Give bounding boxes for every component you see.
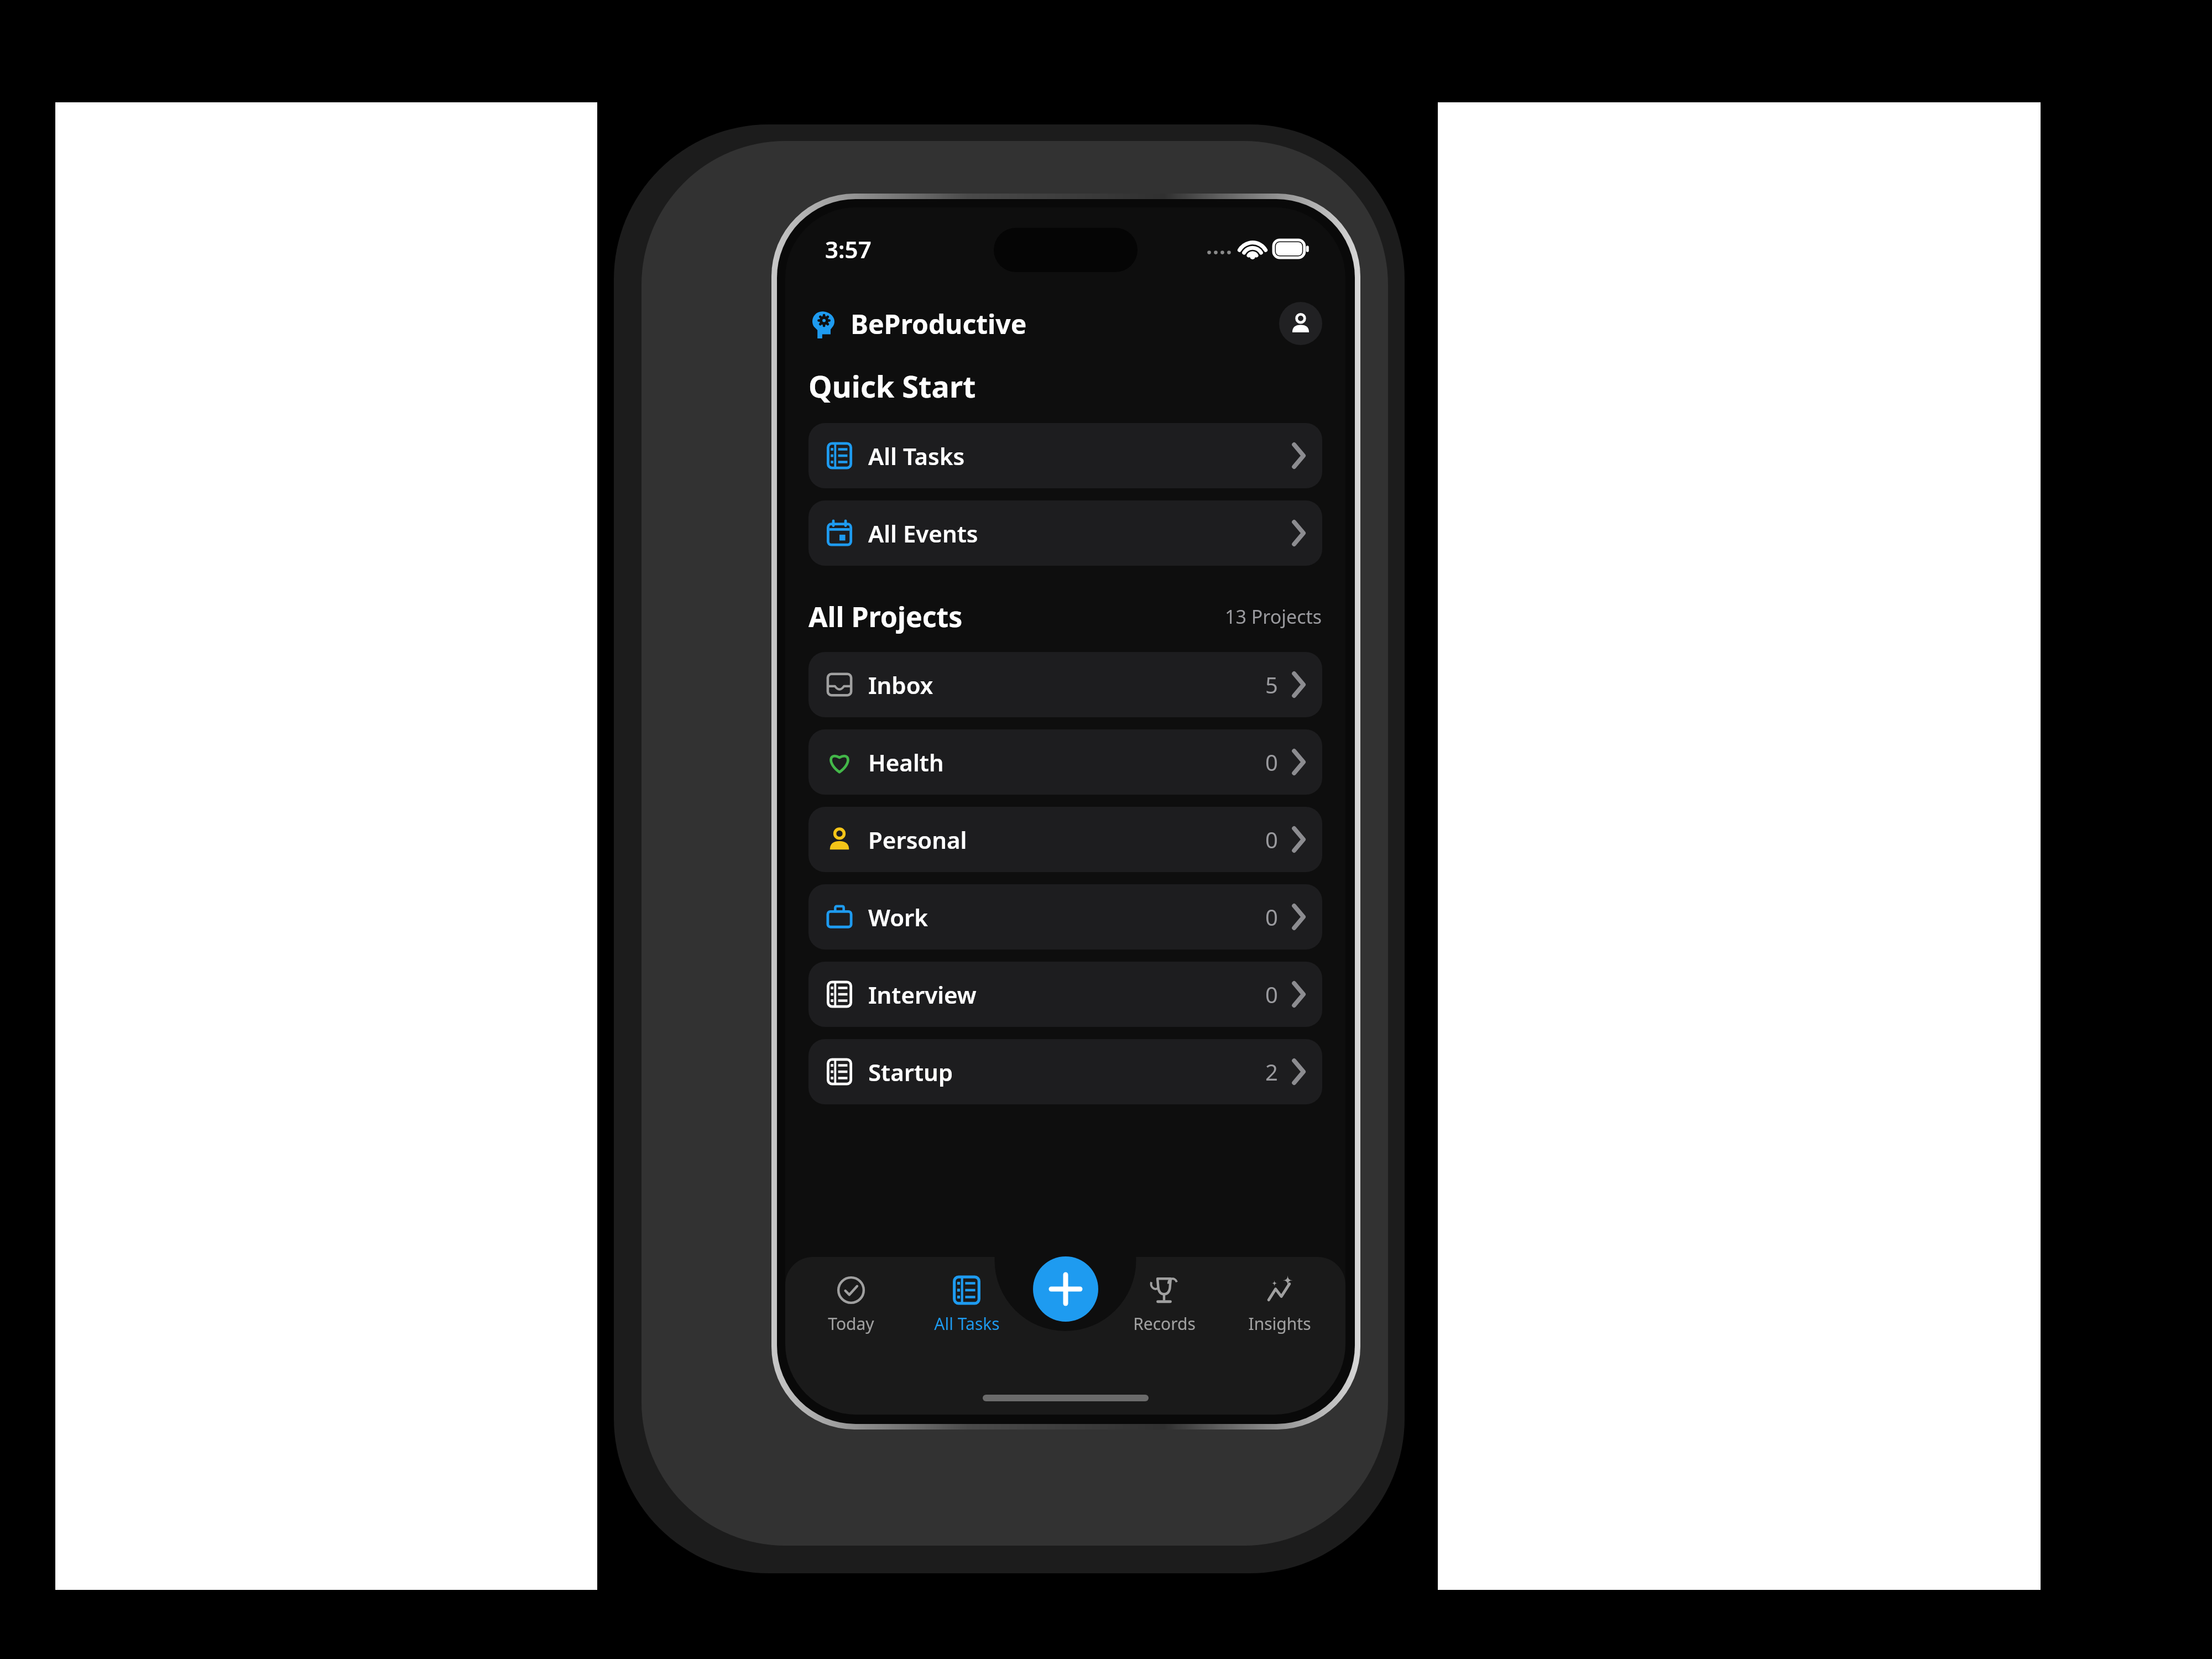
staticText: Startup <box>868 1056 953 1088</box>
button[interactable]: Inbox <box>808 652 1322 717</box>
staticText: 0 <box>1265 902 1278 932</box>
button[interactable]: Health <box>808 729 1322 795</box>
staticText: Quick Start <box>808 366 976 406</box>
staticText: Inbox <box>868 669 933 701</box>
button[interactable]: Personal <box>808 807 1322 872</box>
button[interactable]: Work <box>808 884 1322 950</box>
button[interactable]: Today <box>801 1272 901 1338</box>
staticText: Insights <box>1248 1312 1311 1335</box>
button[interactable]: All Tasks <box>917 1272 1016 1338</box>
staticText: 2 <box>1265 1057 1278 1087</box>
button[interactable]: Insights <box>1230 1272 1329 1338</box>
staticText: Health <box>868 747 944 778</box>
staticText: 13 Projects <box>1225 604 1322 629</box>
staticText: 3:57 <box>825 233 872 265</box>
staticText: All Events <box>868 518 978 549</box>
staticText: BeProductive <box>851 306 1027 342</box>
button[interactable]: Startup <box>808 1039 1322 1104</box>
button[interactable]: All Tasks <box>808 423 1322 488</box>
staticText: 0 <box>1265 747 1278 777</box>
staticText: 5 <box>1265 670 1278 700</box>
staticText: Interview <box>868 979 977 1010</box>
button[interactable]: Add <box>1033 1256 1098 1322</box>
staticText: 0 <box>1265 979 1278 1009</box>
button[interactable]: Profile <box>1279 302 1322 345</box>
staticText: Personal <box>868 824 967 855</box>
button[interactable]: Records <box>1114 1272 1214 1338</box>
staticText: All Projects <box>808 598 963 635</box>
staticText: Records <box>1133 1312 1196 1335</box>
staticText: 0 <box>1265 825 1278 854</box>
staticText: All Tasks <box>934 1312 1000 1335</box>
staticText: Work <box>868 901 928 933</box>
button[interactable]: Interview <box>808 962 1322 1027</box>
staticText: All Tasks <box>868 440 965 472</box>
button[interactable]: All Events <box>808 500 1322 566</box>
staticText: Today <box>828 1312 874 1335</box>
